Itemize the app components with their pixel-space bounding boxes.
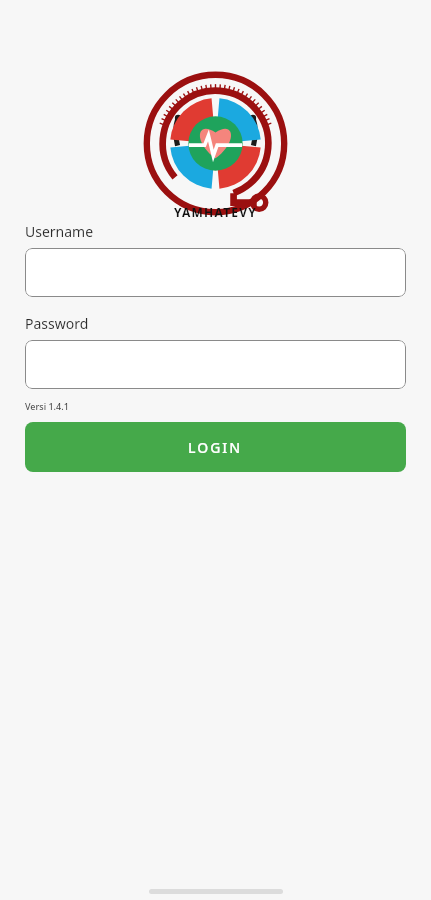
staticText: Password (25, 314, 89, 333)
staticText: YAMHATEVY (174, 204, 257, 220)
button[interactable]: Password input (25, 340, 406, 389)
staticText: LOGIN (188, 438, 243, 457)
button[interactable]: Username input (25, 248, 406, 297)
staticText: Username (25, 222, 94, 241)
staticText: Versi 1.4.1 (25, 400, 69, 412)
button[interactable]: LOGIN (25, 422, 406, 472)
